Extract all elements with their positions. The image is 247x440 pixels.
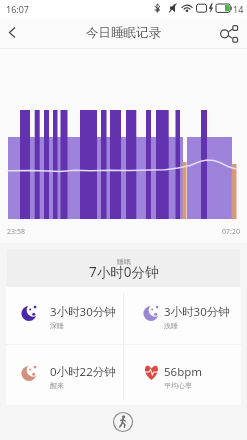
button[interactable]: 3小时30分钟: [6, 290, 123, 345]
staticText: 浅睡: [164, 321, 178, 330]
staticText: 3小时30分钟: [50, 304, 116, 320]
staticText: 睡眠: [117, 257, 131, 266]
staticText: 07:20: [222, 227, 240, 237]
staticText: 平均心率: [164, 381, 192, 390]
button[interactable]: [109, 408, 137, 436]
staticText: 56bpm: [164, 364, 203, 380]
button[interactable]: 睡眠: [7, 249, 240, 287]
button[interactable]: 0小时22分钟: [6, 350, 123, 405]
staticText: 7小时0分钟: [89, 263, 159, 281]
staticText: 14: [233, 3, 244, 15]
button[interactable]: [216, 21, 242, 47]
staticText: 0小时22分钟: [50, 364, 116, 380]
staticText: 深睡: [50, 321, 64, 330]
staticText: 3小时30分钟: [164, 304, 230, 320]
button[interactable]: 3小时30分钟: [124, 290, 241, 345]
staticText: 醒来: [50, 381, 64, 390]
staticText: 今日睡眠记录: [86, 25, 161, 41]
button[interactable]: [2, 22, 26, 46]
staticText: 16:07: [6, 3, 30, 15]
button[interactable]: 56bpm: [124, 350, 241, 405]
staticText: 23:58: [7, 227, 25, 237]
